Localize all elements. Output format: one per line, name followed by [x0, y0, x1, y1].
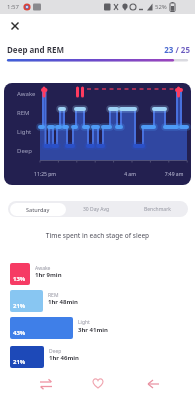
staticText: Light	[78, 319, 90, 326]
staticText: 21%	[13, 358, 26, 366]
button[interactable]	[90, 375, 106, 391]
button[interactable]	[9, 20, 21, 32]
button[interactable]: 30 Day Avg	[66, 201, 127, 217]
staticText: Light	[17, 128, 32, 136]
button[interactable]	[144, 376, 162, 392]
staticText: 43%	[13, 329, 26, 337]
button[interactable]: 13%	[10, 263, 30, 285]
staticText: 1hr 9min	[35, 271, 62, 279]
button[interactable]: Awake	[4, 83, 191, 185]
staticText: 13%	[13, 275, 26, 283]
staticText: 1hr 46min	[49, 354, 79, 362]
button[interactable]: 21%	[10, 346, 44, 368]
staticText: 52%	[155, 3, 167, 11]
staticText: 1hr 48min	[48, 298, 78, 306]
button[interactable]	[36, 376, 56, 392]
staticText: Saturday	[26, 206, 50, 213]
staticText: 3hr 41min	[78, 326, 108, 334]
staticText: Benchmark	[144, 206, 171, 213]
staticText: 7:49 am	[154, 171, 191, 178]
staticText: Deep	[17, 147, 32, 155]
button[interactable]: 21%	[10, 290, 43, 312]
staticText: Awake	[17, 90, 36, 98]
button[interactable]: 43%	[10, 317, 73, 339]
staticText: REM	[17, 109, 30, 117]
staticText: 1:57	[7, 3, 19, 11]
button[interactable]: Saturday	[10, 203, 66, 216]
staticText: 21%	[13, 302, 26, 310]
staticText: Deep	[49, 348, 62, 355]
staticText: 11:25 pm	[25, 171, 65, 178]
staticText: REM	[48, 292, 59, 299]
staticText: Time spent in each stage of sleep	[0, 231, 195, 240]
button[interactable]: Benchmark	[127, 201, 188, 217]
staticText: 23 / 25	[152, 44, 190, 55]
staticText: 30 Day Avg	[83, 206, 110, 213]
staticText: Awake	[35, 265, 51, 272]
staticText: Deep and REM	[7, 44, 64, 55]
staticText: 4 am	[110, 171, 150, 178]
